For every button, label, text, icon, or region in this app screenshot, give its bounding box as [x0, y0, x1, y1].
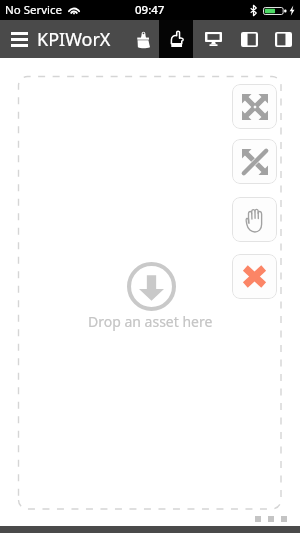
button[interactable]: Close	[232, 254, 277, 299]
button[interactable]: Resize	[232, 139, 277, 184]
staticText: Drop an asset here	[88, 312, 213, 331]
button[interactable]: Menu	[0, 20, 39, 58]
button[interactable]: Right panel	[266, 20, 300, 58]
staticText: 09:47	[135, 2, 165, 18]
button[interactable]: Pan	[232, 197, 277, 242]
button[interactable]: Pointer	[160, 20, 194, 58]
button[interactable]: Left panel	[232, 20, 266, 58]
button[interactable]: Fit to screen	[232, 84, 277, 129]
staticText: KPIWorX	[37, 27, 111, 52]
button[interactable]: Brush	[126, 20, 160, 58]
button[interactable]: Display	[196, 20, 230, 58]
staticText: No Service	[5, 2, 63, 18]
